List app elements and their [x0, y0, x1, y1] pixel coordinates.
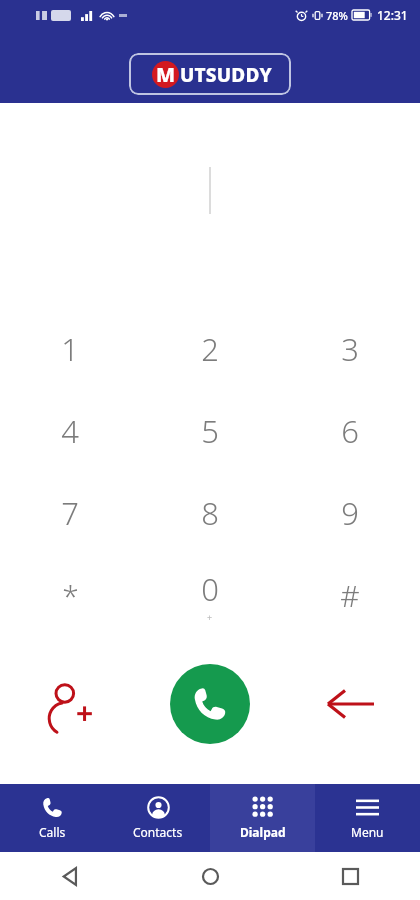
button[interactable]: Menu: [315, 784, 420, 852]
staticText: 4: [61, 410, 79, 452]
staticText: UTSUDDY: [180, 62, 272, 88]
staticText: 12:31: [377, 7, 408, 23]
staticText: 1: [61, 328, 79, 370]
button[interactable]: 7: [0, 472, 140, 554]
staticText: 8: [201, 492, 219, 534]
button[interactable]: *: [0, 554, 140, 636]
button[interactable]: 0: [140, 554, 280, 636]
staticText: #: [340, 575, 360, 616]
button[interactable]: 6: [280, 390, 420, 472]
button[interactable]: Dialpad: [210, 784, 315, 852]
staticText: 9: [341, 492, 359, 534]
staticText: 0: [201, 568, 219, 610]
staticText: 5: [201, 410, 219, 452]
button[interactable]: 9: [280, 472, 420, 554]
button[interactable]: 3: [280, 308, 420, 390]
button[interactable]: Call: [170, 664, 250, 744]
button[interactable]: 2: [140, 308, 280, 390]
button[interactable]: 4: [0, 390, 140, 472]
button[interactable]: Mutsuddy logo: [129, 53, 291, 95]
staticText: M: [156, 61, 176, 88]
button[interactable]: Add contact: [0, 654, 140, 754]
staticText: +: [207, 611, 213, 623]
staticText: Contacts: [133, 824, 183, 840]
button[interactable]: 1: [0, 308, 140, 390]
staticText: Calls: [39, 824, 66, 840]
staticText: 6: [341, 410, 359, 452]
button[interactable]: Contacts: [105, 784, 210, 852]
staticText: 7: [61, 492, 79, 534]
button[interactable]: #: [280, 554, 420, 636]
staticText: Dialpad: [240, 824, 286, 840]
staticText: *: [62, 575, 79, 616]
button[interactable]: 8: [140, 472, 280, 554]
staticText: 3: [341, 328, 359, 370]
staticText: Menu: [351, 824, 384, 840]
staticText: 2: [201, 328, 219, 370]
button[interactable]: 5: [140, 390, 280, 472]
button[interactable]: Calls: [0, 784, 105, 852]
staticText: 78%: [326, 8, 348, 23]
button[interactable]: Backspace: [280, 654, 420, 754]
